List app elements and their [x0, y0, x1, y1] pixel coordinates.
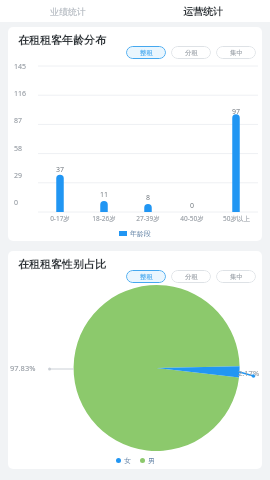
staticText: 27-39岁 — [136, 214, 160, 223]
staticText: 业绩统计 — [50, 6, 86, 17]
staticText: 0 — [14, 198, 19, 208]
staticText: 男 — [148, 456, 155, 465]
staticText: 在租租客年龄分布 — [18, 33, 106, 47]
staticText: 97 — [232, 107, 241, 117]
button[interactable]: 整租 — [126, 270, 166, 283]
staticText: 分租 — [185, 49, 198, 57]
staticText: 97.83% — [10, 363, 36, 373]
staticText: 40-50岁 — [180, 214, 204, 223]
button[interactable]: 分租 — [171, 46, 211, 59]
button[interactable]: 运营统计 — [135, 0, 270, 22]
button[interactable]: 整租 — [126, 46, 166, 59]
staticText: 运营统计 — [183, 5, 223, 18]
staticText: 女 — [124, 456, 131, 465]
staticText: 0 — [190, 201, 195, 211]
staticText: 整租 — [140, 273, 153, 281]
staticText: 29 — [14, 171, 23, 181]
staticText: 整租 — [140, 49, 153, 57]
staticText: 50岁以上 — [223, 214, 250, 223]
staticText: 18-26岁 — [92, 214, 116, 223]
staticText: 145 — [14, 62, 27, 72]
staticText: 0-17岁 — [50, 214, 70, 223]
staticText: 58 — [14, 144, 23, 154]
staticText: 集中 — [230, 273, 243, 281]
staticText: 分租 — [185, 273, 198, 281]
button[interactable]: 集中 — [216, 46, 256, 59]
button[interactable]: 分租 — [171, 270, 211, 283]
staticText: 116 — [14, 89, 27, 99]
staticText: 年龄段 — [130, 229, 151, 238]
staticText: 集中 — [230, 49, 243, 57]
staticText: 37 — [56, 165, 65, 175]
staticText: 在租租客性别占比 — [18, 257, 106, 271]
button[interactable]: 集中 — [216, 270, 256, 283]
staticText: 8 — [146, 193, 151, 203]
staticText: 87 — [14, 116, 23, 126]
staticText: 11 — [100, 190, 109, 200]
staticText: 2.17% — [238, 368, 260, 378]
button[interactable]: 业绩统计 — [0, 0, 135, 22]
